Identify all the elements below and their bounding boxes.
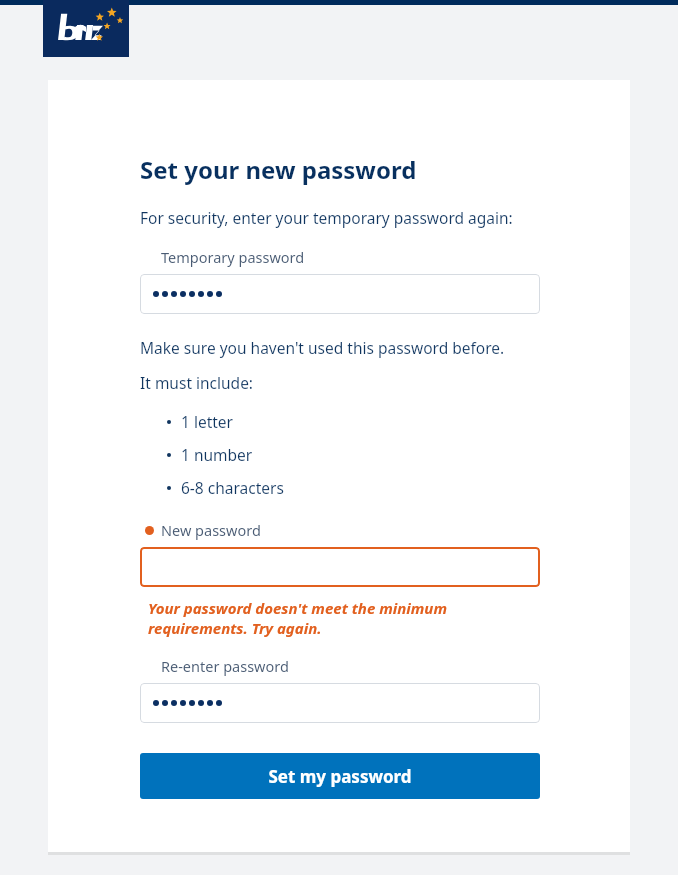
staticText: Your password doesn't meet the minimum r…	[148, 598, 447, 638]
button[interactable]: BNZ home	[43, 0, 129, 57]
button[interactable]	[140, 683, 540, 723]
staticText: Re-enter password	[161, 656, 289, 676]
staticText: Set your new password	[140, 153, 417, 186]
staticText: 6-8 characters	[181, 477, 284, 498]
button[interactable]	[140, 547, 540, 587]
staticText: For security, enter your temporary passw…	[140, 207, 513, 228]
staticText: It must include:	[140, 372, 254, 393]
button[interactable]: Set my password	[140, 753, 540, 799]
staticText: 1 letter	[181, 411, 233, 432]
staticText: 1 number	[181, 444, 253, 465]
staticText: Set my password	[268, 765, 412, 788]
staticText: Make sure you haven't used this password…	[140, 337, 505, 358]
staticText: Temporary password	[161, 247, 305, 267]
button[interactable]	[140, 274, 540, 314]
staticText: New password	[161, 520, 261, 540]
